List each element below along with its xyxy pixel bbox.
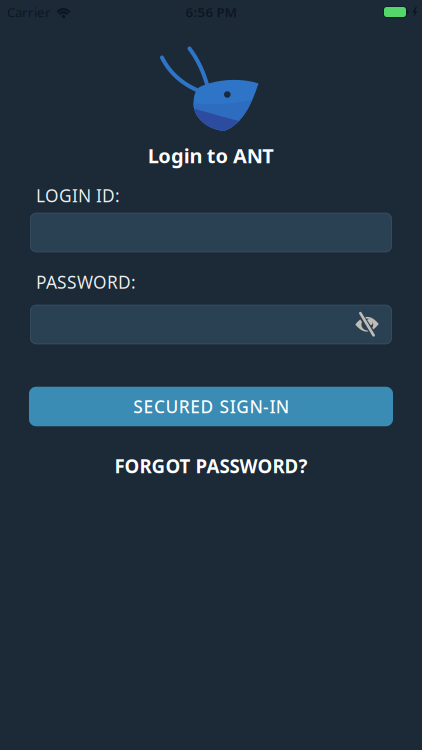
- staticText: Carrier: [7, 3, 51, 21]
- staticText: PASSWORD:: [36, 270, 136, 293]
- button[interactable]: Password: [30, 305, 392, 344]
- button[interactable]: FORGOT PASSWORD?: [114, 454, 307, 478]
- button[interactable]: Show password: [349, 315, 392, 334]
- staticText: SECURED SIGN-IN: [133, 395, 289, 418]
- button[interactable]: SECURED SIGN-IN: [29, 387, 393, 426]
- staticText: FORGOT PASSWORD?: [114, 454, 307, 478]
- staticText: Login to ANT: [148, 142, 274, 169]
- staticText: 6:56 PM: [185, 3, 236, 21]
- staticText: LOGIN ID:: [36, 184, 120, 207]
